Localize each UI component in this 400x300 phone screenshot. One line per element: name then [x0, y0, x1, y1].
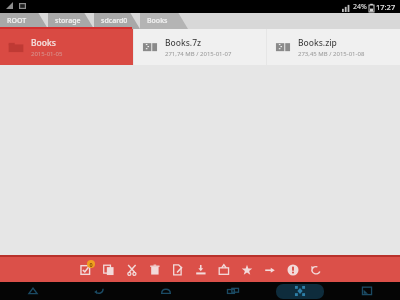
button[interactable]: Books.zip — [267, 29, 400, 65]
staticText: 24% — [353, 2, 367, 12]
button[interactable]: Properties — [281, 257, 304, 282]
button[interactable]: Cut — [120, 257, 143, 282]
button[interactable]: Books — [140, 13, 188, 29]
staticText: Books.7z — [165, 37, 202, 49]
button[interactable]: Delete — [143, 257, 166, 282]
staticText: 271,74 MB / 2015-01-07 — [165, 50, 232, 58]
button[interactable]: Extract — [189, 257, 212, 282]
button[interactable]: Menu — [0, 282, 66, 300]
button[interactable]: Home — [132, 282, 199, 300]
button[interactable]: Books — [0, 29, 133, 65]
staticText: 0 — [89, 261, 93, 268]
staticText: sdcard0 — [101, 16, 128, 26]
button[interactable]: Compress — [212, 257, 235, 282]
staticText: 273,45 MB / 2015-01-08 — [298, 50, 365, 58]
button[interactable]: Recents — [199, 282, 266, 300]
button[interactable]: Bookmark — [235, 257, 258, 282]
staticText: Books — [31, 37, 56, 49]
staticText: 17:27 — [376, 2, 396, 12]
button[interactable]: Rename — [166, 257, 189, 282]
button[interactable]: Books.7z — [134, 29, 266, 65]
button[interactable]: Select all — [74, 257, 97, 282]
button[interactable]: Send — [258, 257, 281, 282]
button[interactable]: Multi window — [266, 282, 333, 300]
button[interactable]: ROOT — [0, 13, 48, 29]
staticText: Books — [147, 16, 168, 26]
staticText: 2015-01-05 — [31, 50, 63, 58]
button[interactable]: Copy — [97, 257, 120, 282]
button[interactable]: sdcard0 — [94, 13, 140, 29]
button[interactable]: Back — [66, 282, 132, 300]
staticText: storage — [55, 16, 81, 26]
button[interactable]: storage — [48, 13, 94, 29]
button[interactable]: Undo — [304, 257, 327, 282]
button[interactable]: Screenshot — [333, 282, 400, 300]
staticText: Books.zip — [298, 37, 337, 49]
staticText: ROOT — [7, 16, 27, 26]
